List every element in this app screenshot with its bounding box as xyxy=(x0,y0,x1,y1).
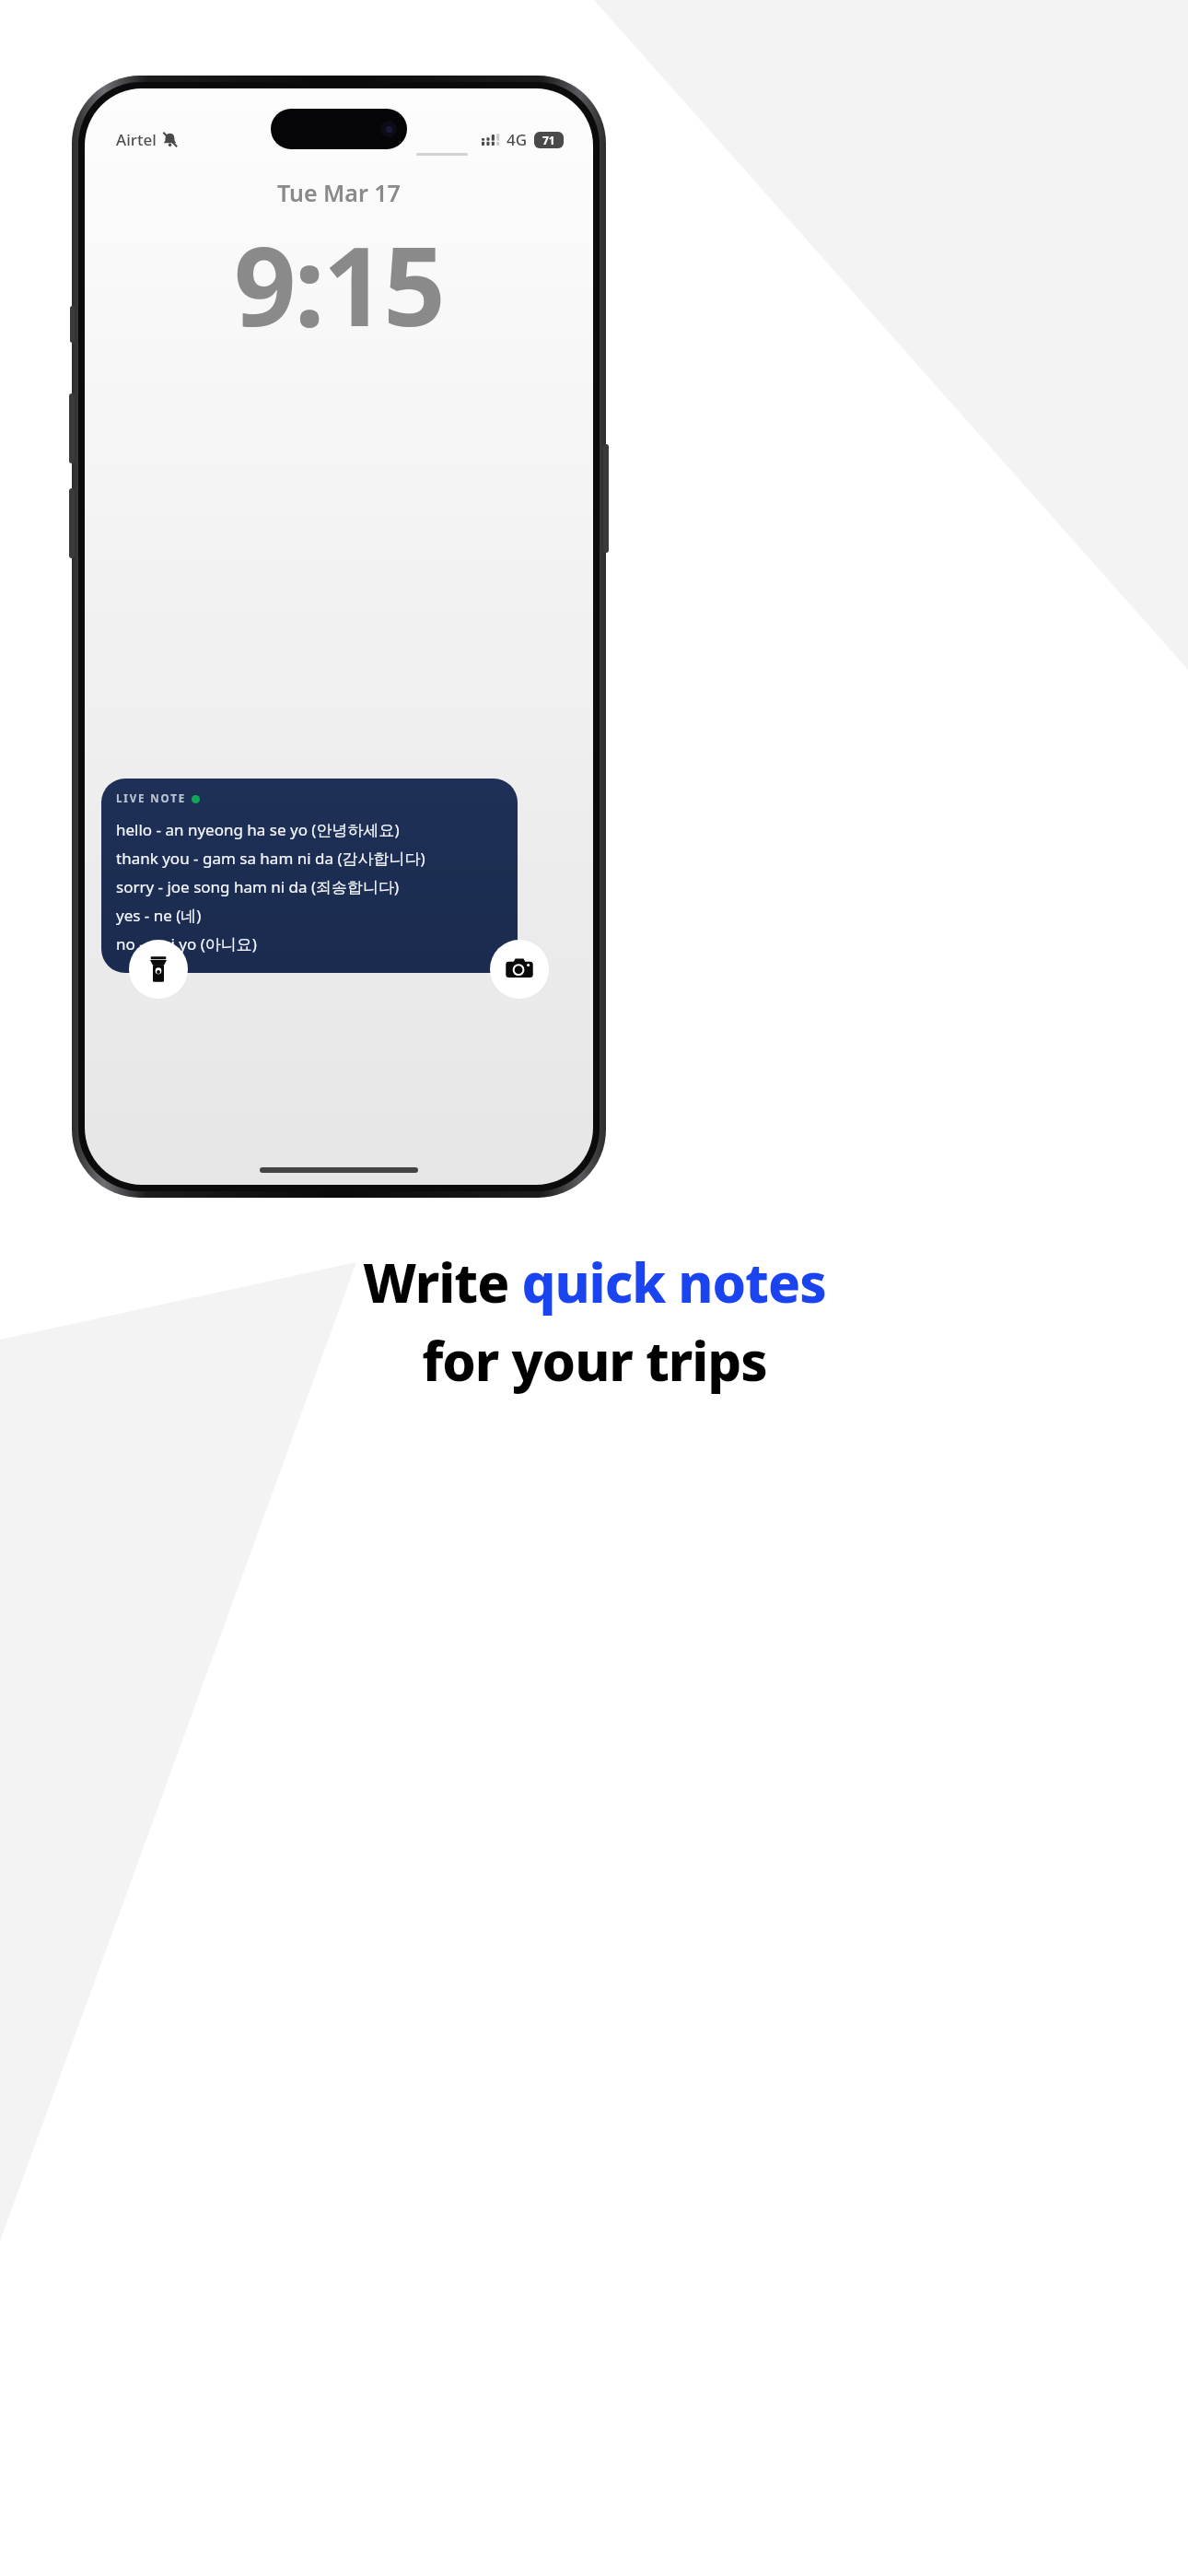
staticText: for your trips xyxy=(422,1324,767,1397)
staticText: Airtel xyxy=(116,129,157,150)
staticText: sorry - joe song ham ni da (죄송합니다) xyxy=(116,876,400,897)
staticText: yes - ne (네) xyxy=(116,905,202,926)
button[interactable]: Flashlight xyxy=(129,940,188,999)
staticText: 9:15 xyxy=(234,210,444,358)
staticText: thank you - gam sa ham ni da (감사합니다) xyxy=(116,848,425,869)
staticText: no - a ni yo (아니요) xyxy=(116,933,257,954)
staticText: Tue Mar 17 xyxy=(277,177,401,208)
staticText: 71 xyxy=(542,133,555,147)
staticText: 4G xyxy=(507,129,528,150)
staticText: LIVE NOTE xyxy=(116,791,187,806)
button[interactable]: LIVE NOTE xyxy=(101,779,518,973)
staticText: Write quick notes xyxy=(363,1246,826,1318)
staticText: hello - an nyeong ha se yo (안녕하세요) xyxy=(116,819,400,840)
button[interactable]: Camera xyxy=(490,940,549,999)
